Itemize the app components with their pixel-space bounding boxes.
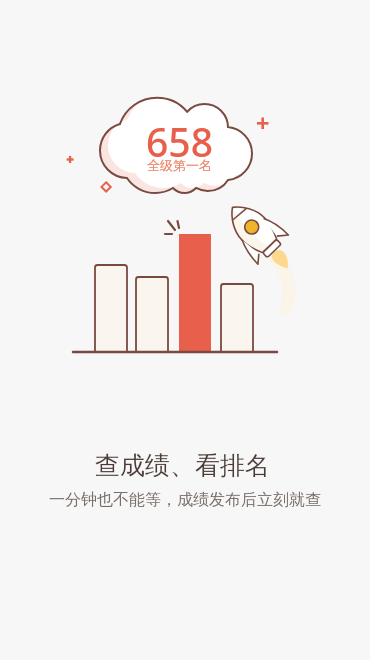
staticText: 查成绩、看排名 [95,450,270,481]
staticText: 一分钟也不能等，成绩发布后立刻就查 [49,490,321,510]
staticText: 658 [146,115,213,168]
staticText: 全级第一名 [147,157,212,173]
